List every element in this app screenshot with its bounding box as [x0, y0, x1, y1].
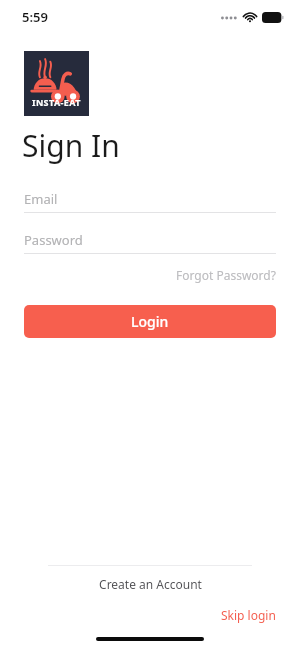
button[interactable]: Skip login — [221, 605, 300, 625]
staticText: Email — [24, 190, 58, 208]
button[interactable]: Password — [24, 231, 276, 254]
button[interactable]: Login — [24, 305, 276, 338]
staticText: INSTA-EAT — [32, 96, 81, 108]
other: Insta-Eat logo — [24, 51, 89, 116]
staticText: Login — [131, 312, 169, 331]
staticText: Skip login — [221, 607, 276, 623]
staticText: Password — [24, 231, 83, 249]
button[interactable]: Create an Account — [0, 576, 300, 592]
staticText: Create an Account — [99, 576, 202, 592]
button[interactable]: Forgot Password? — [176, 265, 300, 285]
staticText: 5:59 — [22, 8, 48, 26]
staticText: Sign In — [22, 125, 120, 166]
button[interactable]: Email — [24, 190, 276, 213]
staticText: Forgot Password? — [176, 267, 276, 283]
